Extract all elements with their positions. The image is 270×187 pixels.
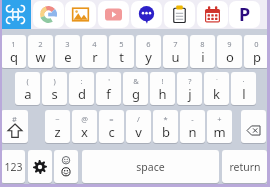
button[interactable]: ) <box>42 72 67 105</box>
button[interactable]: Keyboard menu <box>0 0 31 29</box>
staticText: b <box>162 123 170 141</box>
button[interactable]: 7 <box>163 35 188 68</box>
staticText: j <box>188 85 192 103</box>
button[interactable]: Messages <box>131 1 162 28</box>
button[interactable]: 4 <box>82 35 107 68</box>
staticText: 4 <box>92 39 97 49</box>
button[interactable]: 0 <box>244 35 269 68</box>
staticText: y <box>145 48 152 66</box>
button[interactable]: 3 <box>55 35 80 68</box>
staticText: d <box>78 85 86 103</box>
staticText: u <box>171 48 180 66</box>
button[interactable]: 2 <box>28 35 53 68</box>
staticText: & <box>133 76 139 86</box>
button[interactable]: Calendar <box>197 1 228 28</box>
staticText: ! <box>161 76 164 86</box>
staticText: 1 <box>11 39 16 49</box>
button[interactable]: / <box>126 110 151 143</box>
staticText: P <box>239 2 251 27</box>
staticText: c <box>108 123 115 141</box>
button[interactable]: return <box>222 150 267 183</box>
staticText: f <box>106 85 111 103</box>
staticText: 8 <box>200 39 205 49</box>
staticText: 6 <box>146 39 151 49</box>
staticText: space <box>136 160 165 174</box>
staticText: @ <box>81 114 88 124</box>
button[interactable]: 123 <box>1 150 25 183</box>
button[interactable]: - <box>180 110 205 143</box>
staticText: r <box>92 48 98 66</box>
staticText: g <box>132 85 140 103</box>
button[interactable]: 6 <box>136 35 161 68</box>
button[interactable]: 5 <box>109 35 134 68</box>
staticText: · <box>242 76 245 86</box>
staticText: 7 <box>173 39 178 49</box>
staticText: z <box>54 123 61 141</box>
staticText: x <box>81 123 88 141</box>
staticText: s <box>51 85 58 103</box>
staticText: 3 <box>65 39 70 49</box>
button[interactable]: Shift <box>1 110 28 143</box>
button[interactable]: 8 <box>190 35 215 68</box>
staticText: ( <box>26 76 29 86</box>
button[interactable]: space <box>82 150 219 183</box>
button[interactable]: Photos <box>65 1 96 28</box>
staticText: - <box>191 114 194 124</box>
staticText: w <box>35 48 46 66</box>
staticText: 2 <box>38 39 43 49</box>
staticText: ~ <box>55 114 60 124</box>
button[interactable]: ? <box>177 72 202 105</box>
staticText: o <box>226 48 234 66</box>
staticText: m <box>213 123 226 141</box>
button[interactable]: : <box>69 72 94 105</box>
button[interactable]: ( <box>15 72 40 105</box>
button[interactable]: + <box>207 110 232 143</box>
staticText: 0 <box>254 39 259 49</box>
staticText: ' <box>108 76 110 86</box>
staticText: a <box>24 85 32 103</box>
button[interactable]: @ <box>72 110 97 143</box>
button[interactable]: Backspace <box>241 110 266 143</box>
staticText: n <box>188 123 197 141</box>
staticText: k <box>213 85 220 103</box>
button[interactable]: Clipboard <box>164 1 195 28</box>
button[interactable]: ~ <box>45 110 70 143</box>
staticText: ? <box>188 76 192 86</box>
staticText: return <box>229 160 261 174</box>
staticText: i <box>201 48 205 66</box>
button[interactable]: Emoji <box>54 150 78 183</box>
button[interactable]: 1 <box>1 35 26 68</box>
button[interactable]: YouTube <box>98 1 129 28</box>
staticText: 5 <box>119 39 124 49</box>
staticText: p <box>253 48 261 66</box>
staticText: 9 <box>227 39 232 49</box>
button[interactable]: ' <box>96 72 121 105</box>
button[interactable]: · <box>231 72 256 105</box>
staticText: q <box>10 48 18 66</box>
button[interactable]: * <box>153 110 178 143</box>
staticText: = <box>109 114 114 124</box>
button[interactable]: 9 <box>217 35 242 68</box>
staticText: : <box>80 76 83 86</box>
staticText: v <box>135 123 142 141</box>
button[interactable]: ˙ <box>204 72 229 105</box>
staticText: * <box>163 114 168 124</box>
button[interactable]: Google <box>33 1 64 28</box>
staticText: ) <box>53 76 56 86</box>
staticText: / <box>137 114 140 124</box>
staticText: + <box>217 114 222 124</box>
button[interactable]: = <box>99 110 124 143</box>
staticText: # <box>12 114 17 124</box>
button[interactable]: ! <box>150 72 175 105</box>
staticText: 123 <box>4 160 23 174</box>
staticText: t <box>119 48 124 66</box>
staticText: e <box>64 48 72 66</box>
staticText: h <box>158 85 167 103</box>
button[interactable]: & <box>123 72 148 105</box>
staticText: l <box>242 85 246 103</box>
button[interactable]: Translate <box>229 1 260 28</box>
button[interactable]: Settings <box>28 150 52 183</box>
staticText: ˙ <box>216 76 218 86</box>
